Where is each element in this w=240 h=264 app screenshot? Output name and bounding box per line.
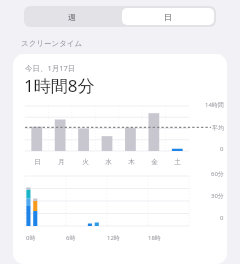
staticText: 今日、1月17日	[25, 63, 76, 73]
staticText: 0時	[26, 234, 36, 242]
staticText: 1時間8分	[24, 74, 95, 97]
button[interactable]: 週	[24, 6, 120, 27]
staticText: 水	[105, 158, 112, 166]
staticText: 日	[34, 158, 41, 166]
staticText: 木	[128, 158, 135, 166]
staticText: 0	[220, 145, 224, 153]
staticText: 14時間	[205, 101, 224, 109]
staticText: 金	[151, 158, 158, 166]
staticText: 18時	[148, 234, 161, 242]
staticText: 土	[174, 158, 181, 166]
staticText: 日	[164, 12, 172, 22]
staticText: 12時	[107, 234, 120, 242]
staticText: 火	[82, 158, 89, 166]
button[interactable]: 今日、1月17日	[13, 54, 227, 264]
button[interactable]: 日	[122, 8, 214, 25]
staticText: 0	[220, 214, 224, 222]
staticText: スクリーンタイム	[21, 39, 83, 48]
staticText: 6時	[66, 234, 76, 242]
staticText: 週	[68, 12, 76, 22]
staticText: 平均	[212, 124, 224, 132]
staticText: 60分	[211, 170, 224, 178]
staticText: 月	[58, 158, 65, 166]
staticText: 30分	[211, 192, 224, 200]
